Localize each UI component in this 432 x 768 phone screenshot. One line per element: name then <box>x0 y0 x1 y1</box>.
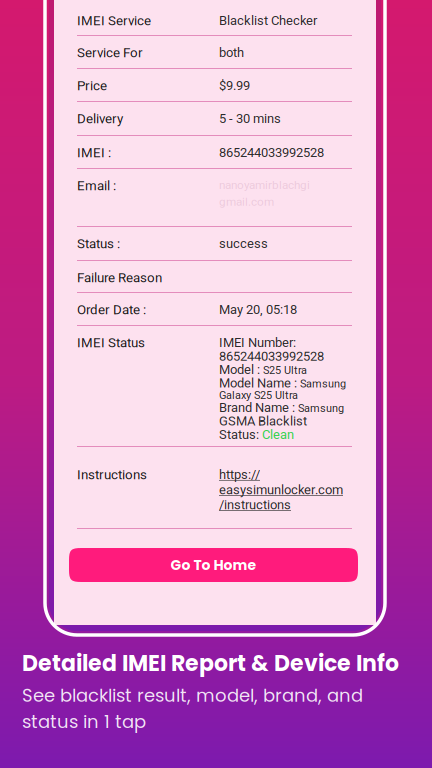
staticText: IMEI : <box>77 145 111 161</box>
staticText: Status: <box>219 427 262 442</box>
staticText: Go To Home <box>170 555 256 575</box>
staticText: Detailed IMEI Report & Device Info <box>22 648 399 679</box>
staticText: 865244033992528 <box>219 349 324 364</box>
staticText: May 20, 05:18 <box>219 302 297 317</box>
staticText: 5 - 30 mins <box>219 111 281 126</box>
staticText: gmail.com <box>219 195 274 209</box>
staticText: /instructions <box>219 497 291 512</box>
staticText: status in 1 tap <box>22 709 146 734</box>
staticText: Price <box>77 78 107 94</box>
staticText: Status : <box>77 236 120 252</box>
staticText: Galaxy S25 Ultra <box>219 389 298 402</box>
staticText: IMEI Number: <box>219 335 296 350</box>
staticText: both <box>219 45 244 60</box>
staticText: Model : S25 Ultra <box>219 362 307 377</box>
staticText: GSMA Blacklist <box>219 413 307 429</box>
staticText: See blacklist result, model, brand, and <box>22 683 363 708</box>
staticText: Clean <box>262 427 294 442</box>
staticText: $9.99 <box>219 78 250 93</box>
staticText: https:// <box>219 467 260 482</box>
staticText: easysimunlocker.com <box>219 482 343 497</box>
button[interactable]: Go To Home <box>69 548 358 582</box>
staticText: nanoyamirblachgi <box>219 178 310 192</box>
staticText: Instructions <box>77 467 147 483</box>
staticText: IMEI Status <box>77 335 145 351</box>
staticText: Model Name : Samsung <box>219 376 346 390</box>
staticText: Blacklist Checker <box>219 13 317 28</box>
staticText: Order Date : <box>77 302 146 318</box>
staticText: Delivery <box>77 111 123 127</box>
staticText: Failure Reason <box>77 270 162 286</box>
staticText: Brand Name : Samsung <box>219 400 344 415</box>
staticText: success <box>219 236 268 251</box>
staticText: Service For <box>77 45 143 61</box>
staticText: Email : <box>77 178 116 194</box>
staticText: 865244033992528 <box>219 145 324 160</box>
staticText: IMEI Service <box>77 13 151 29</box>
